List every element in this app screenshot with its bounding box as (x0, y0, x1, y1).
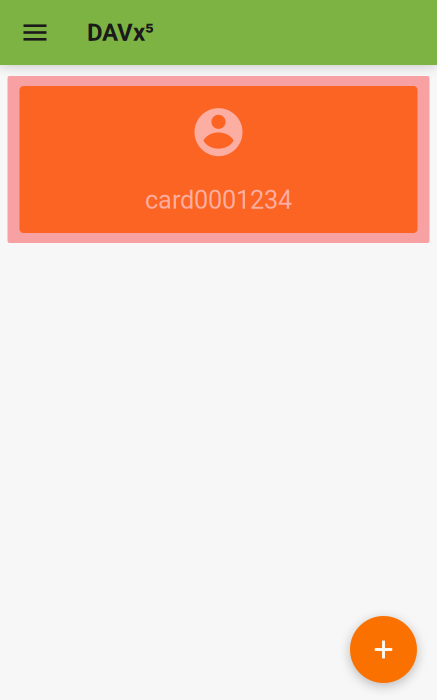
staticText: card0001234 (145, 185, 292, 215)
button[interactable]: card0001234 (0, 76, 437, 243)
button[interactable]: Add account (350, 616, 417, 683)
staticText: DAVx⁵ (87, 18, 154, 46)
button[interactable]: Open navigation menu (11, 8, 59, 56)
